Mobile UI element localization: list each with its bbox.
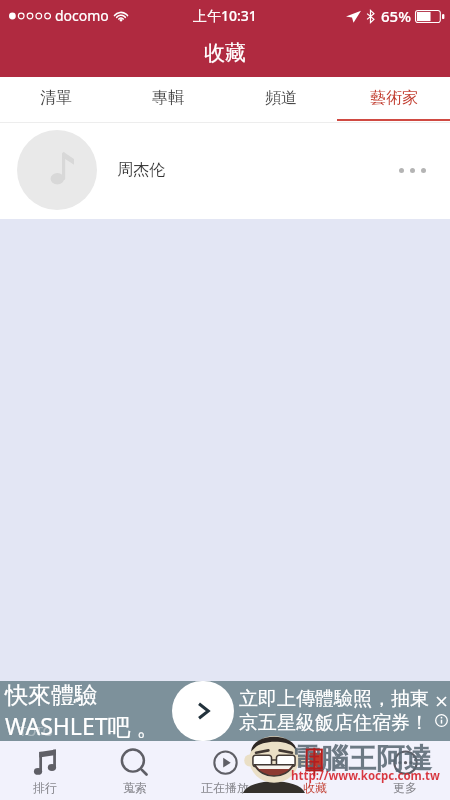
staticText: http://www.kocpc.com.tw — [291, 768, 440, 784]
button[interactable]: 清單 — [0, 77, 112, 123]
staticText: 立即上傳體驗照，抽東 — [239, 687, 429, 711]
staticText: 蒐索 — [123, 780, 147, 795]
staticText: docomo — [55, 6, 109, 25]
staticText: 收藏 — [303, 780, 327, 795]
staticText: 正在播放 — [201, 780, 249, 795]
button[interactable]: 專輯 — [112, 77, 224, 123]
button[interactable]: 正在播放 — [180, 741, 270, 800]
staticText: 藝術家 — [370, 88, 418, 108]
button[interactable]: 更多 — [360, 741, 450, 800]
other: Open ad — [172, 681, 234, 741]
button[interactable]: 排行 — [0, 741, 90, 800]
staticText: 周杰伦 — [117, 160, 165, 180]
staticText: 65% — [381, 6, 411, 26]
staticText: 上午10:31 — [193, 6, 257, 25]
staticText: 京五星級飯店住宿券！ — [239, 711, 429, 735]
staticText: 排行 — [33, 780, 57, 795]
staticText: 收藏 — [204, 40, 246, 66]
staticText: WASHLET吧 。 — [5, 710, 160, 741]
staticText: 更多 — [393, 780, 417, 795]
staticText: 電腦王阿達 — [292, 741, 432, 776]
button[interactable]: 頻道 — [224, 77, 337, 123]
staticText: TOTO — [19, 722, 53, 740]
button[interactable]: 快來體驗 — [0, 681, 450, 741]
button[interactable]: 蒐索 — [90, 741, 180, 800]
button[interactable]: More options — [390, 148, 434, 192]
staticText: 快來體驗 — [5, 681, 97, 710]
staticText: 頻道 — [265, 88, 297, 108]
button[interactable]: 周杰伦 — [0, 123, 450, 219]
button[interactable]: 藝術家 — [337, 77, 450, 123]
staticText: 專輯 — [152, 88, 184, 108]
button[interactable]: Close ad — [434, 694, 449, 709]
staticText: 清單 — [40, 88, 72, 108]
button[interactable]: Ad info — [434, 713, 449, 728]
button[interactable]: 收藏 — [270, 741, 360, 800]
